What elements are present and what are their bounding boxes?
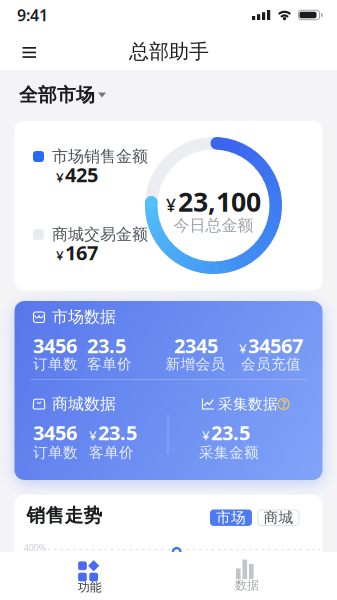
staticText: 采集数据 (218, 395, 278, 413)
staticText: 销售走势 (26, 504, 102, 527)
staticText: 34567 (248, 332, 303, 359)
staticText: 会员充值 (241, 355, 301, 373)
button[interactable]: Menu (19, 43, 40, 62)
staticText: 23.5 (87, 332, 126, 359)
staticText: 167 (65, 239, 98, 266)
staticText: 总部助手 (129, 39, 209, 64)
staticText: ? (281, 397, 286, 411)
staticText: 市场销售金额 (52, 147, 148, 166)
staticText: 市场数据 (52, 307, 116, 327)
staticText: 客单价 (89, 443, 134, 461)
staticText: ¥ (89, 426, 97, 444)
staticText: 23.5 (211, 419, 250, 446)
staticText: 商城数据 (52, 394, 116, 414)
staticText: ¥ (56, 168, 64, 186)
staticText: 订单数 (33, 443, 78, 461)
staticText: ¥ (239, 339, 247, 357)
staticText: 3456 (33, 419, 77, 446)
staticText: 全部市场 (19, 83, 95, 106)
staticText: ¥ (166, 194, 176, 217)
button[interactable]: 商城 (257, 509, 299, 526)
staticText: 23,100 (178, 184, 261, 219)
button[interactable]: 功能 (43, 553, 133, 599)
staticText: 3456 (33, 332, 77, 359)
button[interactable]: 全部市场 (17, 75, 112, 115)
staticText: 数据 (235, 578, 259, 592)
button[interactable]: 市场 (210, 509, 252, 526)
staticText: 商城 (263, 509, 293, 527)
staticText: 市场 (216, 509, 246, 527)
staticText: 功能 (78, 580, 102, 594)
staticText: 23.5 (98, 419, 137, 446)
staticText: 2345 (174, 332, 218, 359)
staticText: 新增会员 (165, 355, 225, 373)
staticText: 商城交易金额 (52, 225, 148, 244)
button[interactable]: 采集数据说明 (277, 397, 290, 410)
staticText: 订单数 (33, 355, 78, 373)
staticText: 今日总金额 (173, 216, 253, 235)
staticText: 客单价 (87, 355, 132, 373)
staticText: 425 (65, 161, 98, 188)
staticText: ¥ (202, 426, 210, 444)
staticText: 400% (23, 541, 46, 554)
staticText: 9:41 (17, 4, 48, 26)
button[interactable]: 数据 (200, 553, 290, 599)
staticText: 采集金额 (199, 443, 259, 461)
staticText: ¥ (56, 246, 64, 264)
